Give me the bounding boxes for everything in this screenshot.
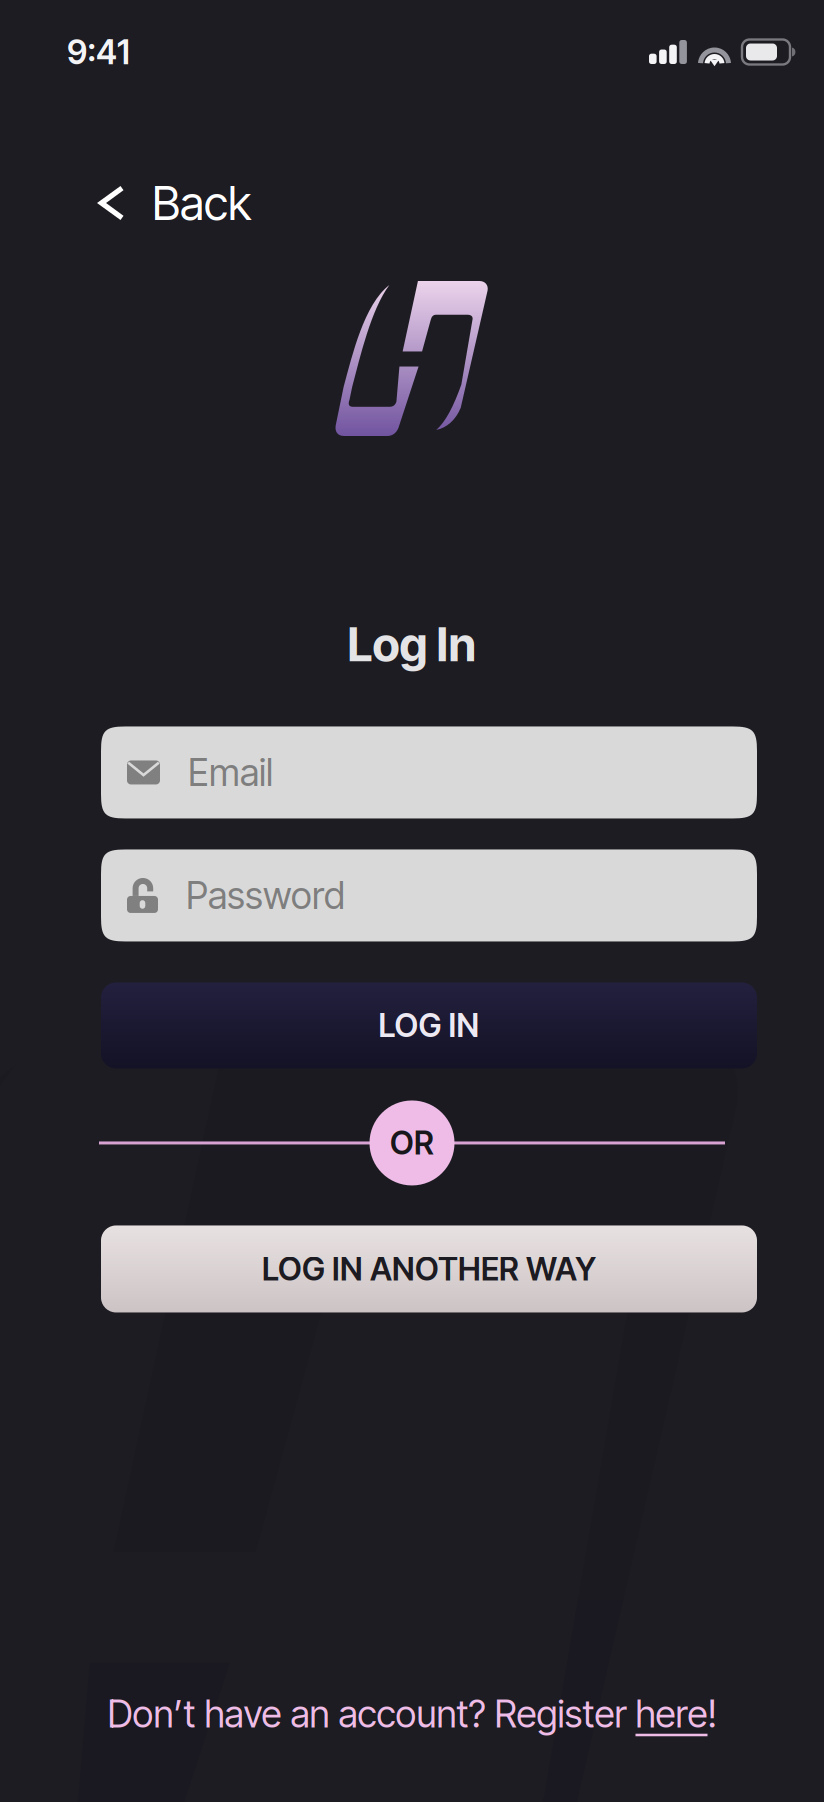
button[interactable]: Back [0,166,275,240]
staticText: Log In [347,616,476,672]
staticText: OR [390,1124,434,1162]
staticText: 9:41 [67,32,130,72]
button[interactable]: Email [101,726,757,818]
button[interactable]: LOG IN ANOTHER WAY [101,1225,757,1312]
button[interactable]: Password [101,849,757,941]
staticText: Email [188,750,273,795]
staticText: LOG IN [378,1006,479,1045]
staticText: Back [152,175,251,231]
button[interactable]: LOG IN [101,982,757,1068]
button[interactable]: Don’t have an account? Register here! [107,1686,716,1742]
staticText: Password [186,873,345,918]
staticText: Don’t have an account? Register here! [107,1691,716,1737]
staticText: LOG IN ANOTHER WAY [262,1250,596,1288]
